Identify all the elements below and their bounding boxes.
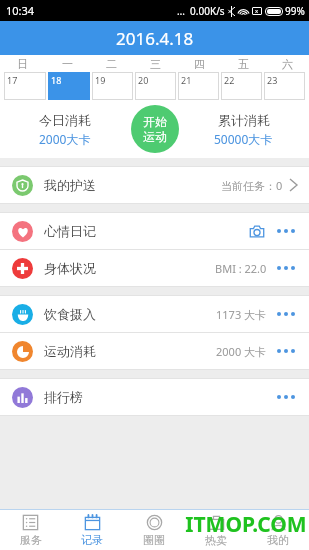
staticText: 我的护送 (44, 177, 96, 193)
button[interactable]: More options (275, 264, 297, 272)
staticText: 排行榜 (44, 389, 83, 405)
staticText: 圈圈 (143, 533, 165, 547)
staticText: 2016.4.18 (116, 27, 194, 50)
staticText: 三 (150, 57, 161, 71)
staticText: 四 (194, 57, 205, 71)
staticText: 一 (62, 57, 73, 71)
button[interactable]: 身体状况 (0, 250, 309, 286)
button[interactable]: More options (275, 347, 297, 355)
staticText: 开始 (143, 114, 167, 129)
staticText: BMI : 22.0 (215, 261, 267, 276)
staticText: 99% (285, 4, 305, 18)
staticText: 运动消耗 (44, 343, 96, 359)
button[interactable]: 17 (4, 72, 46, 100)
staticText: 我的 (267, 533, 289, 547)
staticText: 身体状况 (44, 260, 96, 276)
staticText: 运动 (143, 129, 167, 144)
staticText: x (255, 7, 259, 15)
button[interactable]: 我的护送 (0, 167, 309, 203)
button[interactable]: 运动消耗 (0, 333, 309, 369)
button[interactable]: 18 (48, 72, 90, 100)
staticText: 服务 (20, 533, 42, 547)
button[interactable]: 服务 (0, 510, 61, 550)
button[interactable]: 20 (135, 72, 176, 100)
button[interactable]: 我的 (247, 510, 309, 550)
staticText: 心情日记 (44, 223, 96, 239)
button[interactable]: 圈圈 (123, 510, 185, 550)
staticText: 1173 大卡 (216, 307, 267, 322)
button[interactable]: 热卖 (185, 510, 247, 550)
staticText: 累计消耗 (218, 112, 270, 128)
button[interactable]: 23 (264, 72, 305, 100)
staticText: 18 (51, 74, 62, 86)
staticText: 17 (7, 74, 18, 86)
button[interactable]: More options (275, 393, 297, 401)
button[interactable]: 21 (178, 72, 219, 100)
staticText: 记录 (81, 533, 103, 547)
button[interactable]: 今日消耗 (0, 112, 130, 147)
staticText: 10:34 (6, 3, 35, 18)
button[interactable]: 排行榜 (0, 379, 309, 415)
staticText: 23 (267, 74, 278, 86)
staticText: 日 (17, 57, 28, 71)
staticText: 二 (106, 57, 117, 71)
button[interactable]: More options (275, 310, 297, 318)
staticText: 今日消耗 (39, 112, 91, 128)
button[interactable]: 记录 (61, 510, 123, 550)
staticText: 2000 大卡 (216, 344, 267, 359)
staticText: 六 (282, 57, 293, 71)
staticText: 2000大卡 (39, 131, 91, 147)
button[interactable]: 饮食摄入 (0, 296, 309, 332)
button[interactable]: 累计消耗 (178, 112, 309, 147)
button[interactable]: 19 (92, 72, 133, 100)
staticText: ITMOP.COM (185, 510, 307, 539)
button[interactable]: Take photo (247, 221, 267, 241)
staticText: 当前任务：0 (221, 178, 283, 193)
button[interactable]: 开始 (131, 105, 179, 153)
staticText: 20 (138, 74, 149, 86)
staticText: 50000大卡 (214, 131, 273, 147)
staticText: 22 (224, 74, 235, 86)
staticText: 五 (238, 57, 249, 71)
staticText: 21 (181, 74, 192, 86)
staticText: 饮食摄入 (44, 306, 96, 322)
button[interactable]: 心情日记 (0, 213, 309, 249)
staticText: 19 (95, 74, 106, 86)
button[interactable]: More options (275, 227, 297, 235)
staticText: … 0.00K/s (177, 4, 225, 18)
staticText: 热卖 (205, 533, 227, 547)
button[interactable]: 22 (221, 72, 262, 100)
